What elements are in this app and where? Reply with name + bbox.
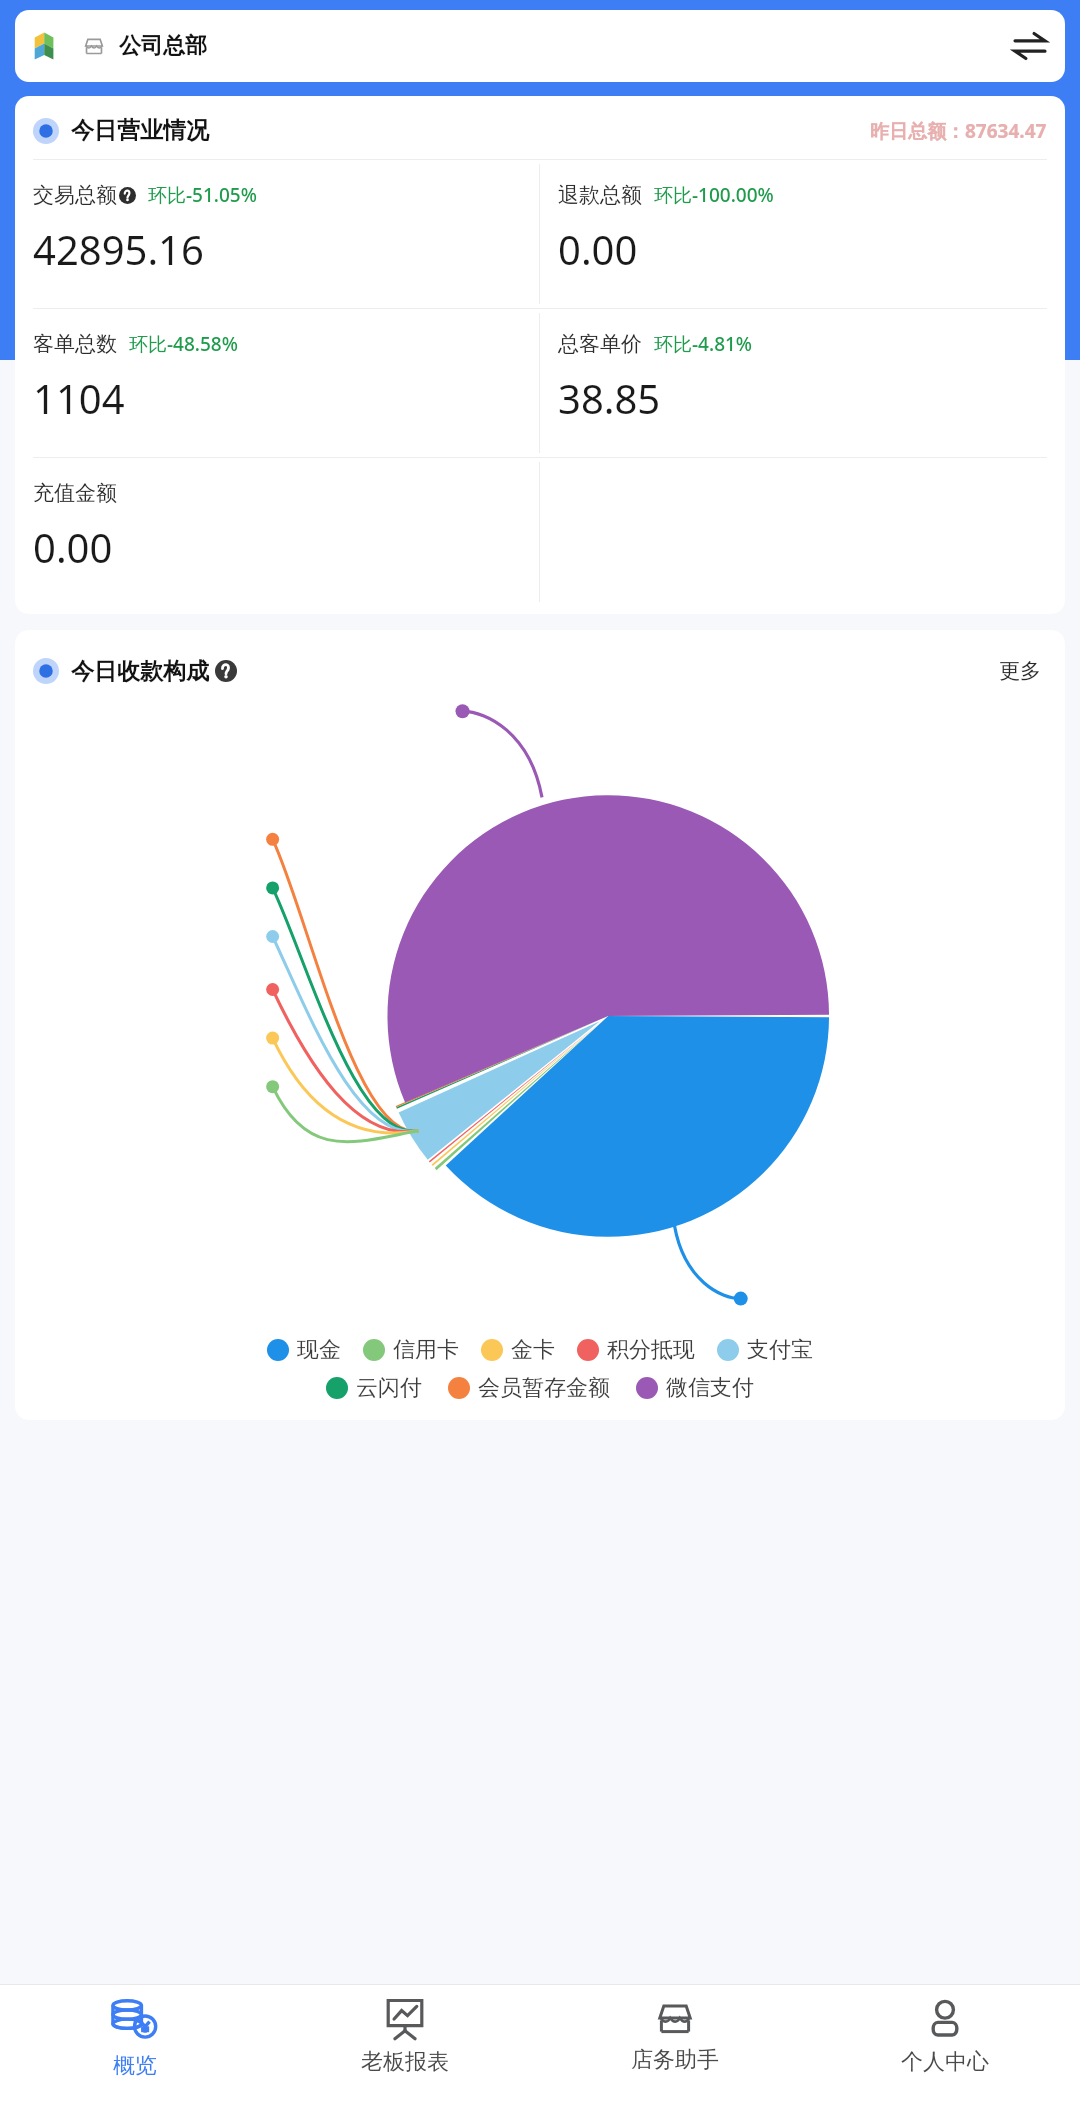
- staticText: 环比-100.00%: [654, 182, 774, 208]
- staticText: 云闪付: [356, 1374, 422, 1402]
- staticText: 退款总额: [558, 182, 642, 208]
- staticText: 老板报表: [361, 2048, 449, 2076]
- button[interactable]: 更多: [993, 652, 1047, 690]
- button[interactable]: 退款总额: [540, 160, 1065, 308]
- staticText: 环比-4.81%: [654, 331, 753, 357]
- staticText: 金卡: [511, 1336, 555, 1364]
- staticText: 积分抵现: [607, 1336, 695, 1364]
- staticText: 今日营业情况: [71, 116, 209, 145]
- staticText: 环比-51.05%: [148, 182, 257, 208]
- button[interactable]: 老板报表: [270, 1984, 540, 2122]
- button[interactable]: 总客单价: [540, 309, 1065, 457]
- button[interactable]: 切换门店: [1013, 29, 1047, 63]
- staticText: 现金: [297, 1336, 341, 1364]
- staticText: 42895.16: [33, 222, 204, 276]
- button[interactable]: 交易总额: [15, 160, 539, 308]
- staticText: 个人中心: [901, 2048, 989, 2076]
- staticText: 会员暂存金额: [478, 1374, 610, 1402]
- staticText: 38.85: [558, 371, 661, 425]
- staticText: 0.00: [33, 520, 113, 574]
- staticText: 公司总部: [119, 32, 207, 60]
- button[interactable]: 充值金额: [15, 458, 539, 606]
- staticText: 概览: [113, 2052, 157, 2080]
- staticText: 店务助手: [631, 2046, 719, 2074]
- staticText: 环比-48.58%: [129, 331, 238, 357]
- staticText: 客单总数: [33, 331, 117, 357]
- button[interactable]: 个人中心: [810, 1984, 1080, 2122]
- staticText: 充值金额: [33, 480, 117, 506]
- staticText: 总客单价: [558, 331, 642, 357]
- button[interactable]: 客单总数: [15, 309, 539, 457]
- staticText: 0.00: [558, 222, 638, 276]
- staticText: 微信支付: [666, 1374, 754, 1402]
- staticText: 昨日总额：87634.47: [870, 118, 1047, 144]
- staticText: 支付宝: [747, 1336, 813, 1364]
- button[interactable]: 店务助手: [540, 1984, 810, 2122]
- staticText: 1104: [33, 371, 125, 425]
- button[interactable]: 公司总部: [15, 10, 1065, 82]
- staticText: 交易总额: [33, 182, 117, 208]
- staticText: 今日收款构成: [71, 657, 209, 686]
- button[interactable]: 概览: [0, 1984, 270, 2122]
- staticText: 信用卡: [393, 1336, 459, 1364]
- staticText: 更多: [999, 658, 1041, 684]
